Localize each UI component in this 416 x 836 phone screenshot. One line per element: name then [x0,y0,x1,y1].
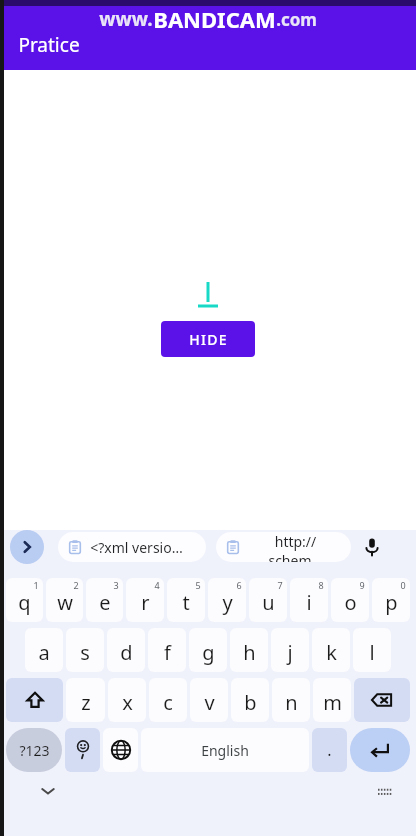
button[interactable]: Switch keyboard [372,778,398,804]
button[interactable]: f [148,628,186,672]
button[interactable]: l [353,628,391,672]
staticText: BANDICAM [153,4,276,34]
button[interactable]: Change language [103,728,138,772]
button[interactable]: y [208,578,246,622]
button[interactable]: i [290,578,328,622]
button[interactable]: v [190,678,228,722]
button[interactable]: n [272,678,310,722]
button[interactable] [190,280,226,310]
button[interactable]: Backspace [354,678,410,722]
staticText: e [99,589,111,616]
staticText: <?xml versio… [90,538,183,557]
button[interactable]: Expand suggestions [10,530,44,564]
staticText: 9 [359,579,365,591]
button[interactable]: o [331,578,369,622]
button[interactable]: e [86,578,123,622]
staticText: 1 [33,579,39,591]
staticText: 8 [318,579,324,591]
button[interactable]: d [107,628,145,672]
staticText: 3 [113,579,119,591]
staticText: n [285,689,298,716]
button[interactable]: x [108,678,146,722]
staticText: s [80,639,90,666]
staticText: ?123 [19,741,50,760]
staticText: English [201,741,249,760]
button[interactable]: w [46,578,83,622]
staticText: 6 [236,579,242,591]
staticText: x [122,689,133,716]
staticText: HIDE [189,330,228,349]
staticText: Pratice [18,32,80,58]
staticText: q [18,589,31,616]
button[interactable]: s [66,628,104,672]
staticText: w [57,589,73,616]
staticText: y [222,589,233,616]
staticText: http://schem… [248,532,343,562]
staticText: k [326,639,337,666]
button[interactable]: http://schem… [216,532,351,562]
button[interactable]: Hide keyboard [34,777,62,805]
button[interactable]: q [6,578,43,622]
button[interactable]: English [141,728,309,772]
staticText: t [182,589,190,616]
button[interactable]: z [66,678,105,722]
button[interactable]: . [312,728,347,772]
button[interactable]: Enter [350,728,410,772]
staticText: g [202,639,215,666]
button[interactable]: g [189,628,227,672]
button[interactable]: a [25,628,63,672]
staticText: 7 [277,579,283,591]
staticText: f [164,639,171,666]
staticText: d [120,639,133,666]
button[interactable]: ?123 [6,728,62,772]
staticText: 4 [154,579,160,591]
button[interactable]: HIDE [161,321,255,357]
staticText: p [385,589,398,616]
staticText: o [344,589,357,616]
button[interactable]: m [313,678,351,722]
staticText: 0 [400,579,406,591]
staticText: l [369,639,375,666]
button[interactable]: Voice input [359,534,385,560]
button[interactable]: r [126,578,164,622]
button[interactable]: p [372,578,410,622]
staticText: 2 [73,579,79,591]
button[interactable]: t [167,578,205,622]
staticText: u [262,589,275,616]
button[interactable]: Emoji [65,728,100,772]
staticText: v [204,689,215,716]
button[interactable]: b [231,678,269,722]
staticText: j [287,639,293,666]
staticText: h [243,639,256,666]
button[interactable]: Shift [6,678,63,722]
button[interactable]: <?xml versio… [58,532,206,562]
staticText: z [81,689,91,716]
staticText: i [306,589,312,616]
button[interactable]: c [149,678,187,722]
staticText: 5 [195,579,201,591]
button[interactable]: u [249,578,287,622]
staticText: r [141,589,150,616]
staticText: b [244,689,257,716]
staticText: m [323,689,342,716]
staticText: . [327,739,332,761]
button[interactable]: j [271,628,309,672]
staticText: .com [276,8,317,31]
button[interactable]: h [230,628,268,672]
button[interactable]: k [312,628,350,672]
staticText: c [163,689,173,716]
staticText: www. [99,6,153,32]
staticText: a [38,639,50,666]
